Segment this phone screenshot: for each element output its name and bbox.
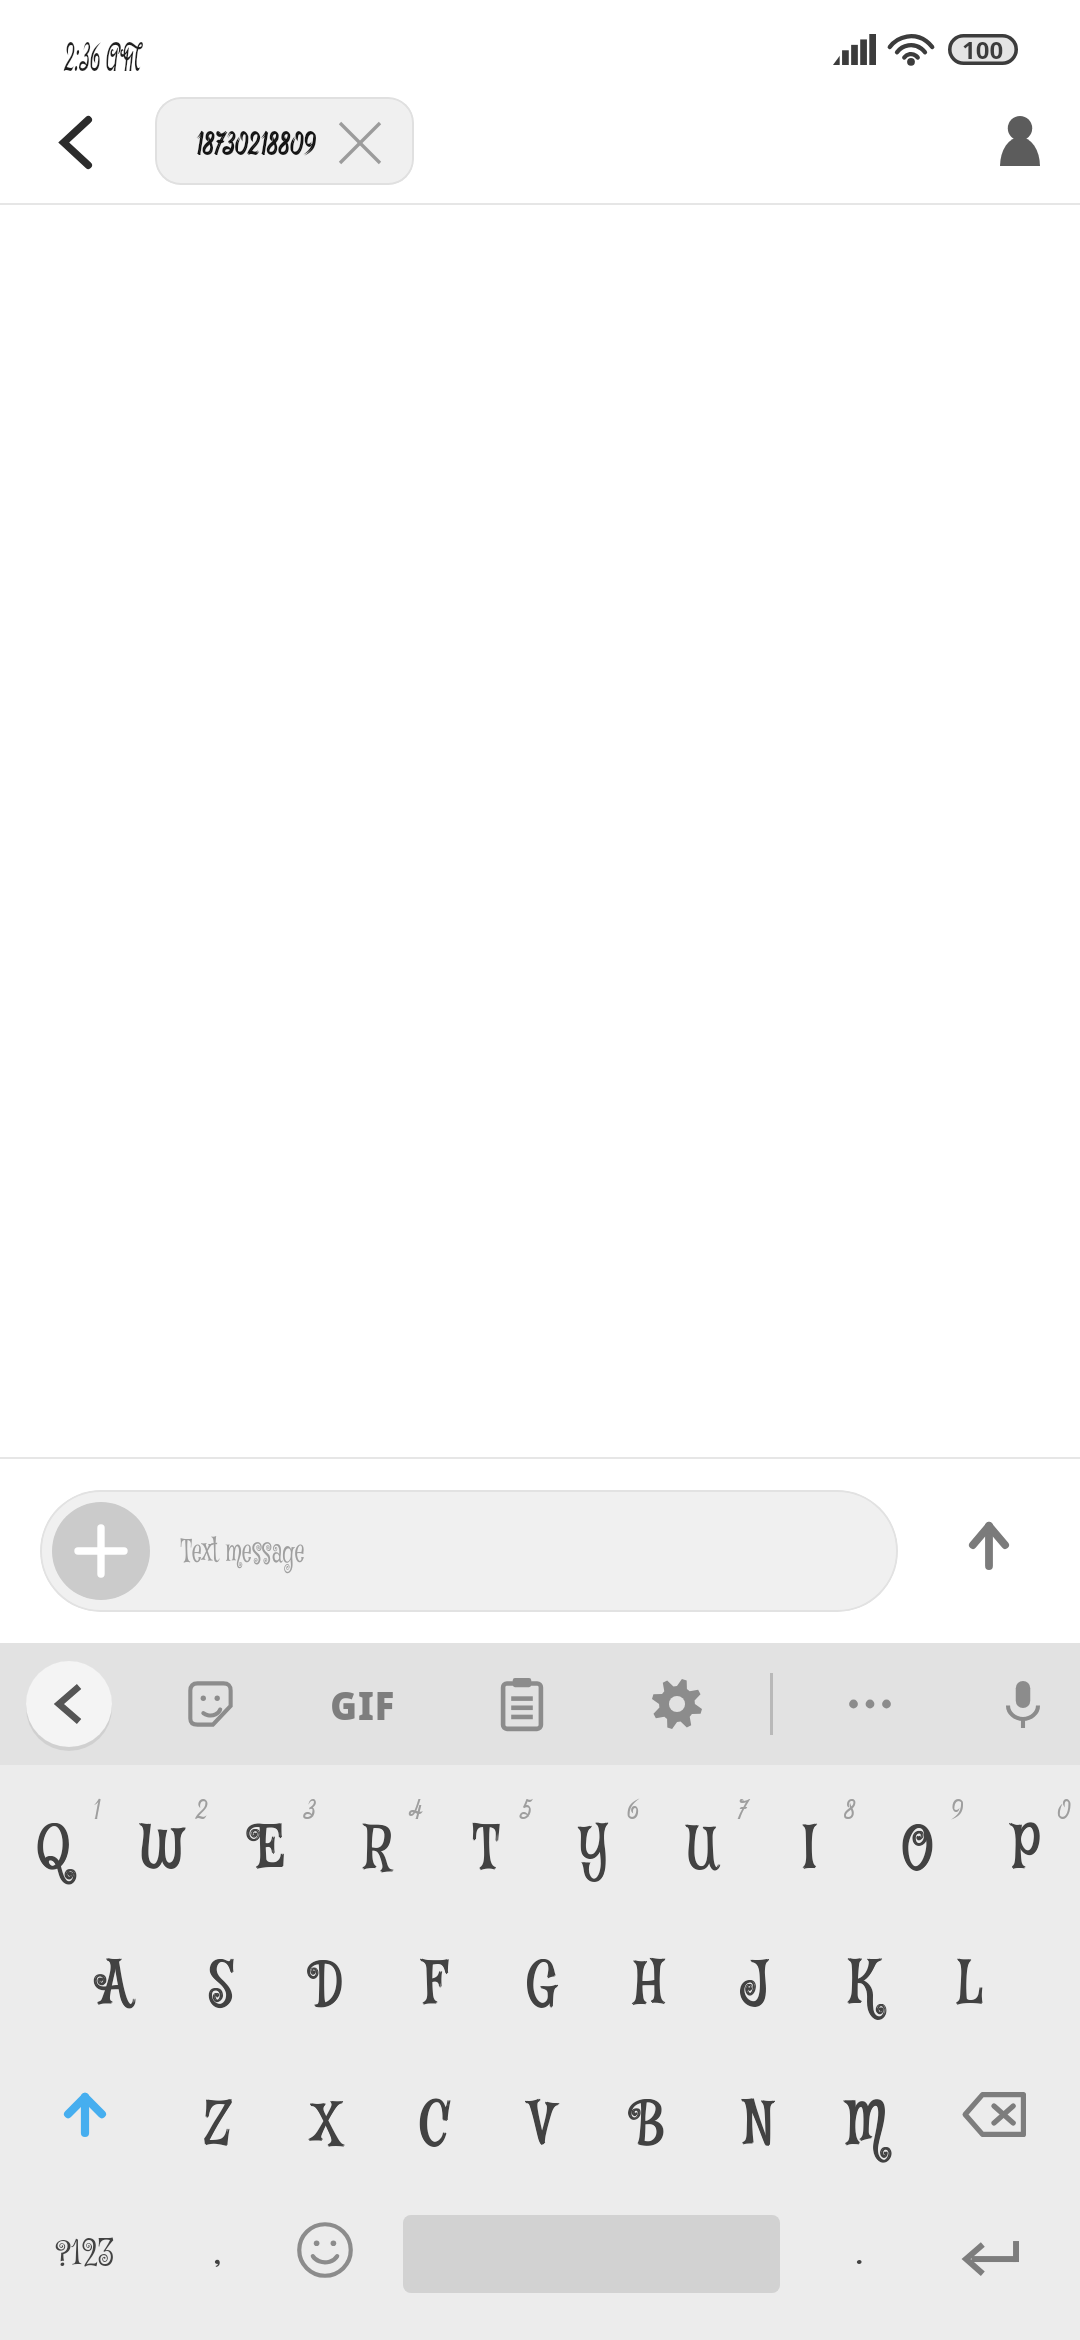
staticText: ?123	[56, 2230, 114, 2279]
button[interactable]: L	[916, 1919, 1024, 2051]
button[interactable]: Y	[540, 1783, 648, 1915]
button[interactable]: C	[380, 2059, 488, 2191]
staticText: X	[311, 2086, 340, 2165]
staticText: O	[902, 1811, 933, 1890]
button[interactable]: GIF	[313, 1654, 413, 1754]
staticText: F	[423, 1946, 445, 2025]
button[interactable]: .	[806, 2197, 914, 2305]
button[interactable]: Back	[26, 92, 126, 192]
button[interactable]: ?123	[31, 2200, 139, 2308]
staticText: E	[254, 1811, 285, 1890]
button[interactable]: M	[812, 2059, 920, 2191]
button[interactable]: V	[488, 2059, 596, 2191]
button[interactable]: E	[216, 1783, 324, 1915]
staticText: 3	[303, 1792, 316, 1825]
staticText: V	[529, 2086, 553, 2165]
button[interactable]: N	[704, 2059, 812, 2191]
button[interactable]: H	[595, 1919, 703, 2051]
staticText: W	[141, 1810, 185, 1889]
button[interactable]: Q	[0, 1783, 108, 1915]
button[interactable]: Stickers	[160, 1654, 260, 1754]
button[interactable]: P	[972, 1783, 1080, 1915]
staticText: I	[804, 1810, 818, 1889]
staticText: R	[364, 1811, 392, 1890]
staticText: ,	[214, 2221, 222, 2281]
staticText: D	[312, 1946, 343, 2025]
button[interactable]: Shift	[31, 2061, 139, 2169]
staticText: L	[958, 1946, 984, 2025]
button[interactable]: Contact	[970, 92, 1070, 192]
staticText: GIF	[330, 1678, 396, 1731]
button[interactable]: Backspace	[934, 2060, 1054, 2168]
staticText: 9	[950, 1792, 963, 1825]
button[interactable]: 18730218809	[155, 97, 414, 185]
button[interactable]: F	[381, 1919, 489, 2051]
button[interactable]: Clipboard	[472, 1654, 572, 1754]
staticText: E	[254, 1810, 285, 1889]
staticText: Z	[206, 2086, 232, 2165]
button[interactable]: ,	[164, 2197, 272, 2305]
button[interactable]: K	[809, 1919, 917, 2051]
button[interactable]: I	[756, 1783, 864, 1915]
staticText: M	[848, 2086, 887, 2165]
staticText: E	[255, 1810, 286, 1889]
staticText: I	[803, 1811, 817, 1890]
button[interactable]: D	[274, 1919, 382, 2051]
button[interactable]: A	[60, 1919, 168, 2051]
button[interactable]: X	[272, 2059, 380, 2191]
button[interactable]: T	[432, 1783, 540, 1915]
button[interactable]: B	[596, 2059, 704, 2191]
staticText: G	[527, 1947, 558, 2026]
button[interactable]: Emoji	[271, 2196, 379, 2304]
staticText: K	[848, 1946, 876, 2025]
button[interactable]: S	[167, 1919, 275, 2051]
button[interactable]: Enter	[932, 2202, 1052, 2310]
staticText: T	[473, 1810, 498, 1889]
staticText: J	[743, 1947, 769, 2026]
staticText: V	[531, 2086, 555, 2165]
staticText: D	[313, 1946, 344, 2025]
staticText: P	[1012, 1811, 1040, 1890]
staticText: O	[902, 1810, 933, 1889]
staticText: T	[474, 1811, 499, 1890]
staticText: F	[425, 1946, 447, 2025]
button[interactable]: J	[702, 1919, 810, 2051]
staticText: V	[530, 2087, 554, 2166]
staticText: 2:36 AM	[64, 33, 140, 81]
button[interactable]: Settings	[627, 1654, 727, 1754]
staticText: M	[847, 2087, 886, 2166]
staticText: H	[635, 1946, 665, 2025]
button[interactable]: Voice input	[973, 1654, 1073, 1754]
button[interactable]: W	[108, 1783, 216, 1915]
button[interactable]: Close keyboard toolbar	[26, 1661, 112, 1747]
staticText: N	[743, 2086, 773, 2165]
button[interactable]: Send	[939, 1496, 1039, 1596]
staticText: Z	[205, 2087, 231, 2166]
staticText: N	[744, 2086, 774, 2165]
staticText: 7	[737, 1792, 748, 1825]
staticText: R	[363, 1810, 391, 1889]
staticText: .	[856, 2221, 864, 2281]
button[interactable]: U	[648, 1783, 756, 1915]
staticText: B	[635, 2087, 665, 2166]
staticText: S	[208, 1946, 233, 2025]
staticText: J	[744, 1946, 770, 2025]
staticText: C	[420, 2086, 450, 2165]
button[interactable]: Add attachment	[52, 1502, 150, 1600]
staticText: Q	[37, 1810, 69, 1889]
staticText: 5	[519, 1792, 532, 1825]
staticText: Text message	[181, 1532, 305, 1573]
staticText: 4	[409, 1792, 423, 1825]
button[interactable]: More	[820, 1654, 920, 1754]
button[interactable]: G	[488, 1919, 596, 2051]
button[interactable]: Text message	[40, 1490, 898, 1612]
button[interactable]: O	[864, 1783, 972, 1915]
button[interactable]: Remove recipient	[328, 111, 392, 175]
staticText: K	[850, 1946, 878, 2025]
button[interactable]: R	[324, 1783, 432, 1915]
staticText: G	[527, 1946, 557, 2025]
staticText: L	[957, 1947, 983, 2026]
button[interactable]: Z	[164, 2059, 272, 2191]
staticText: 18730218809	[196, 125, 316, 163]
